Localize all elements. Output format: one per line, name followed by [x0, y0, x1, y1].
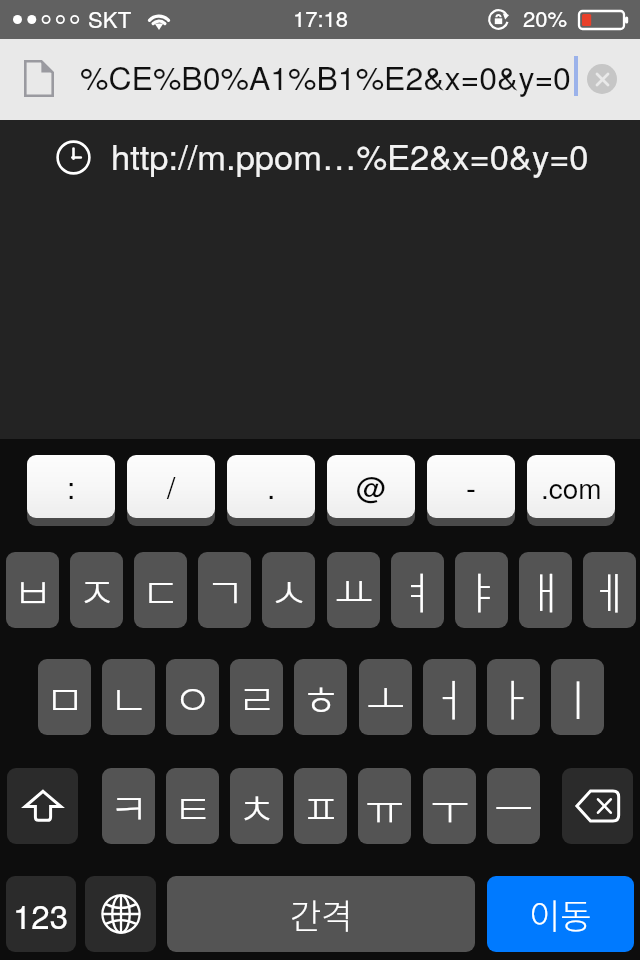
- staticText: ㄱ: [205, 559, 245, 621]
- button[interactable]: @: [327, 455, 415, 518]
- button[interactable]: ㅅ: [262, 552, 315, 628]
- staticText: .: [267, 465, 276, 508]
- button[interactable]: Number keyboard: [6, 876, 76, 952]
- button[interactable]: ㅈ: [70, 552, 123, 628]
- button[interactable]: ㄹ: [230, 659, 283, 735]
- button[interactable]: ㅡ: [487, 768, 540, 844]
- button[interactable]: ㄴ: [102, 659, 155, 735]
- button[interactable]: ㅜ: [423, 768, 476, 844]
- button[interactable]: ㅋ: [102, 768, 155, 844]
- button[interactable]: ㅏ: [487, 659, 540, 735]
- staticText: http://m.ppom…%E2&x=0&y=0: [111, 130, 589, 179]
- staticText: ㅣ: [558, 666, 598, 728]
- staticText: SKT: [88, 3, 132, 35]
- staticText: 123: [13, 891, 69, 938]
- button[interactable]: 간격: [167, 876, 475, 952]
- button[interactable]: -: [427, 455, 515, 518]
- button[interactable]: ㄱ: [198, 552, 251, 628]
- button[interactable]: Clear text: [587, 64, 617, 94]
- button[interactable]: ㅎ: [294, 659, 347, 735]
- staticText: ㅎ: [301, 666, 341, 728]
- staticText: ㅕ: [398, 559, 438, 621]
- button[interactable]: ㅑ: [455, 552, 508, 628]
- staticText: ㅁ: [45, 666, 85, 728]
- staticText: ㅊ: [237, 775, 277, 837]
- staticText: ㅂ: [13, 559, 53, 621]
- staticText: 20%: [523, 2, 568, 34]
- staticText: %CE%B0%A1%B1%E2&x=0&y=0: [80, 53, 571, 99]
- button[interactable]: ㅐ: [519, 552, 572, 628]
- staticText: .com: [541, 467, 602, 507]
- button[interactable]: :: [27, 455, 115, 518]
- staticText: ㅔ: [590, 559, 630, 621]
- button[interactable]: ㅊ: [230, 768, 283, 844]
- staticText: ㅈ: [77, 559, 117, 621]
- staticText: ㅏ: [494, 666, 534, 728]
- staticText: ㅛ: [334, 559, 374, 621]
- button[interactable]: Backspace: [562, 768, 633, 844]
- button[interactable]: ㅇ: [166, 659, 219, 735]
- staticText: -: [466, 465, 476, 508]
- staticText: ㅑ: [462, 559, 502, 621]
- button[interactable]: ㅣ: [551, 659, 604, 735]
- staticText: ㅠ: [365, 775, 405, 837]
- button[interactable]: ㄷ: [134, 552, 187, 628]
- button[interactable]: /: [127, 455, 215, 518]
- button[interactable]: ㅠ: [358, 768, 411, 844]
- staticText: ㄷ: [141, 559, 181, 621]
- staticText: ㅓ: [430, 666, 470, 728]
- button[interactable]: ㅔ: [583, 552, 636, 628]
- button[interactable]: .: [227, 455, 315, 518]
- button[interactable]: ㅂ: [6, 552, 59, 628]
- button[interactable]: ㅓ: [423, 659, 476, 735]
- button[interactable]: ㅍ: [294, 768, 347, 844]
- staticText: :: [67, 465, 76, 508]
- button[interactable]: ㅕ: [391, 552, 444, 628]
- staticText: ㅡ: [494, 775, 534, 837]
- button[interactable]: Shift: [7, 768, 78, 844]
- staticText: ㅐ: [526, 559, 566, 621]
- button[interactable]: .com: [527, 455, 615, 518]
- button[interactable]: ㅛ: [327, 552, 380, 628]
- staticText: ㅍ: [301, 775, 341, 837]
- staticText: @: [356, 465, 387, 508]
- button[interactable]: 이동: [487, 876, 634, 952]
- button[interactable]: ㅁ: [38, 659, 91, 735]
- staticText: ㄹ: [237, 666, 277, 728]
- button[interactable]: Change keyboard: [85, 876, 156, 952]
- staticText: 간격: [290, 890, 353, 939]
- button[interactable]: ㅌ: [166, 768, 219, 844]
- staticText: ㅗ: [366, 666, 406, 728]
- staticText: 17:18: [293, 2, 349, 34]
- staticText: ㄴ: [109, 666, 149, 728]
- staticText: ㅌ: [173, 775, 213, 837]
- staticText: ㅅ: [269, 559, 309, 621]
- staticText: 이동: [529, 890, 592, 939]
- staticText: ㅇ: [173, 666, 213, 728]
- staticText: /: [167, 465, 176, 508]
- staticText: ㅋ: [109, 775, 149, 837]
- button[interactable]: ㅗ: [359, 659, 412, 735]
- button[interactable]: http://m.ppom…%E2&x=0&y=0: [0, 120, 640, 192]
- staticText: ㅜ: [430, 775, 470, 837]
